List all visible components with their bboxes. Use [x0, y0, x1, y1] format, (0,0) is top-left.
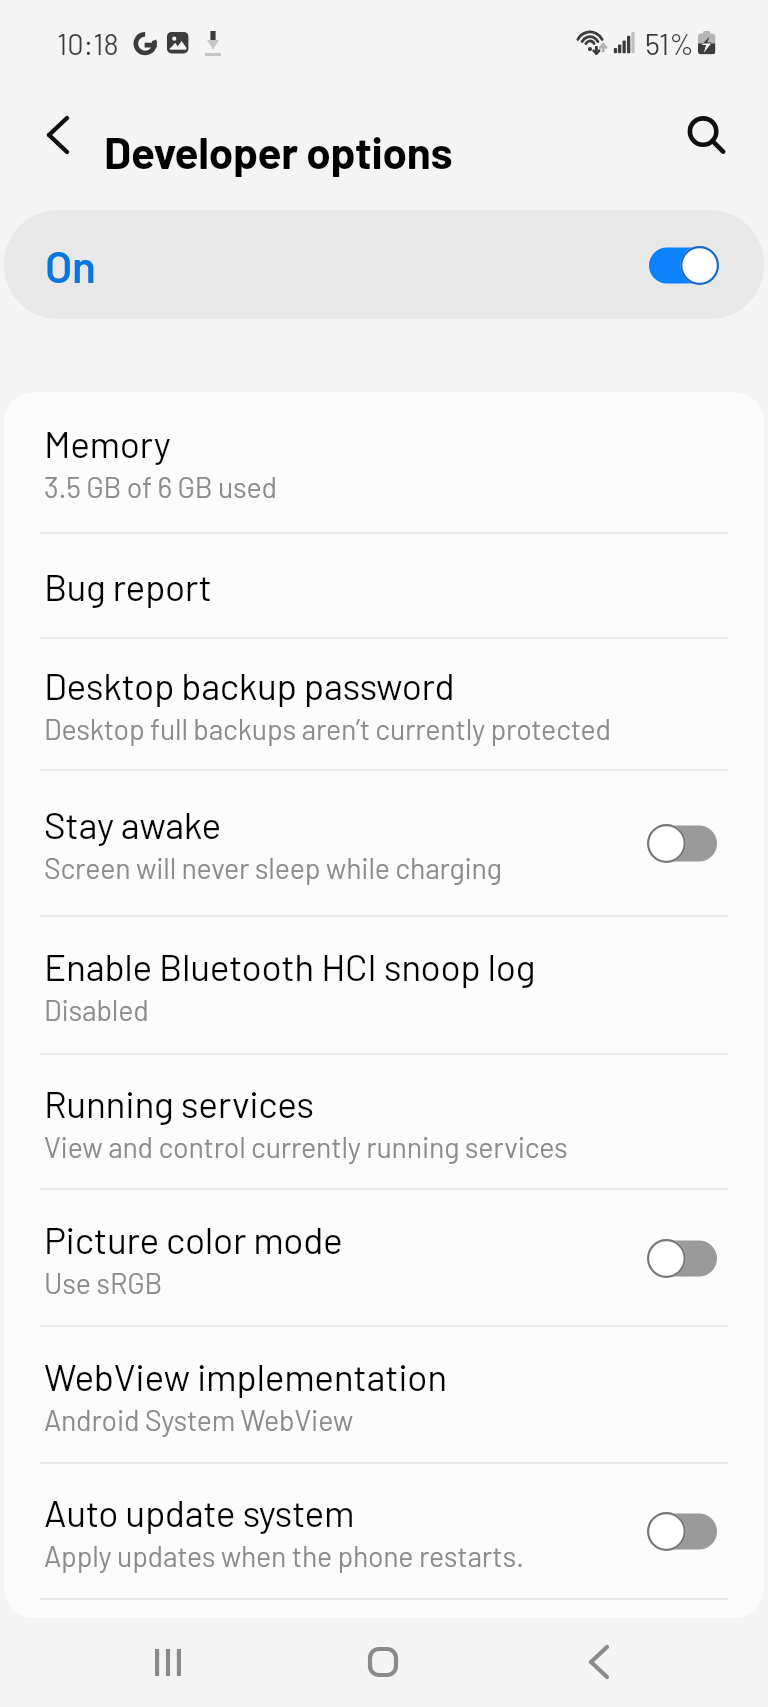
button[interactable]: Running services: [4, 1055, 764, 1188]
button[interactable]: On: [4, 210, 764, 319]
staticText: 10:18: [57, 26, 119, 61]
staticText: Picture color mode: [44, 1217, 343, 1261]
staticText: On: [45, 239, 96, 292]
button[interactable]: Desktop backup password: [4, 639, 764, 769]
staticText: Screen will never sleep while charging: [44, 850, 502, 884]
button[interactable]: Auto update system switch: [644, 1507, 720, 1555]
button[interactable]: Picture color mode switch: [644, 1234, 720, 1282]
button[interactable]: Stay awake: [4, 771, 764, 915]
staticText: Auto update system: [44, 1490, 355, 1534]
button[interactable]: Picture color mode: [4, 1190, 764, 1325]
staticText: Stay awake: [44, 802, 221, 846]
staticText: Memory: [44, 421, 171, 465]
staticText: 51%: [645, 26, 694, 61]
button[interactable]: Navigate up: [24, 101, 92, 169]
button[interactable]: Bug report: [4, 534, 764, 637]
button[interactable]: Recent apps: [138, 1632, 198, 1692]
button[interactable]: Enable Bluetooth HCI snoop log: [4, 917, 764, 1053]
staticText: Use sRGB: [44, 1265, 163, 1299]
staticText: Running services: [44, 1081, 314, 1125]
button[interactable]: Memory: [4, 392, 764, 532]
staticText: Desktop full backups aren’t currently pr…: [44, 711, 611, 745]
staticText: Bug report: [44, 564, 212, 608]
staticText: View and control currently running servi…: [44, 1129, 568, 1163]
staticText: Disabled: [44, 992, 149, 1026]
button[interactable]: Back: [569, 1632, 629, 1692]
button[interactable]: Search: [671, 101, 739, 169]
staticText: WebView implementation: [44, 1354, 447, 1398]
staticText: Desktop backup password: [44, 663, 455, 707]
staticText: Android System WebView: [44, 1402, 354, 1436]
staticText: Developer options: [104, 125, 453, 178]
staticText: Apply updates when the phone restarts.: [44, 1538, 524, 1572]
staticText: 3.5 GB of 6 GB used: [44, 469, 277, 503]
button[interactable]: Auto update system: [4, 1464, 764, 1598]
button[interactable]: Home: [353, 1632, 413, 1692]
button[interactable]: Stay awake switch: [644, 819, 720, 867]
staticText: Enable Bluetooth HCI snoop log: [44, 944, 536, 988]
button[interactable]: WebView implementation: [4, 1327, 764, 1462]
button[interactable]: Developer options on: [646, 241, 722, 289]
